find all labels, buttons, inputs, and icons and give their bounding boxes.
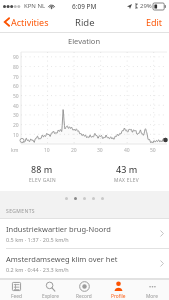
staticText: SEGMENTS (6, 208, 36, 215)
staticText: 0.2 km · 0:44 · 23.3 km/h (6, 266, 69, 273)
button[interactable]: Edit (140, 13, 169, 31)
button[interactable]: Activities (0, 13, 55, 31)
staticText: Edit (146, 16, 163, 28)
staticText: KPN NL (24, 2, 46, 10)
staticText: 60 (13, 83, 19, 90)
staticText: 30 (13, 112, 19, 119)
staticText: 30 (97, 147, 103, 154)
staticText: MAX ELEV (114, 177, 140, 184)
staticText: 29% (140, 2, 152, 10)
button[interactable]: Amsterdamseweg klim over het spoorviaduc… (0, 249, 169, 278)
button[interactable]: Profile (101, 280, 135, 300)
staticText: Ride (75, 16, 95, 29)
button[interactable]: Explore (33, 280, 67, 300)
staticText: 50 (150, 147, 156, 154)
button[interactable]: Record (67, 280, 101, 300)
button[interactable]: More (135, 280, 169, 300)
staticText: 90 (13, 54, 19, 61)
staticText: Activities (11, 16, 49, 28)
staticText: 6:09 PM (72, 2, 97, 11)
staticText: More (146, 293, 158, 300)
button[interactable]: Feed (0, 280, 33, 300)
staticText: 70 (13, 74, 19, 81)
staticText: 40 (124, 147, 130, 154)
staticText: 40 (13, 103, 19, 110)
staticText: Profile (111, 293, 126, 300)
staticText: 20 (13, 122, 19, 129)
staticText: 0.5 km · 1:37 · 20.5 km/h (6, 236, 69, 243)
staticText: 50 (13, 93, 19, 100)
staticText: Record (76, 293, 92, 300)
staticText: Amsterdamseweg klim over het spoorviaduc… (6, 254, 160, 264)
staticText: Elevation (68, 36, 101, 46)
staticText: 10 (44, 147, 50, 154)
staticText: Explore (42, 293, 59, 300)
staticText: km (11, 147, 19, 154)
staticText: 43 m (116, 163, 138, 175)
staticText: 20 (71, 147, 77, 154)
staticText: Feed (11, 293, 22, 300)
staticText: Industriekwartier brug-Noord (6, 224, 111, 234)
staticText: 10 (13, 132, 19, 139)
button[interactable]: Industriekwartier brug-Noord (0, 219, 169, 248)
staticText: 88 m (31, 163, 53, 175)
staticText: ELEV GAIN (29, 177, 56, 184)
staticText: 80 (13, 64, 19, 71)
